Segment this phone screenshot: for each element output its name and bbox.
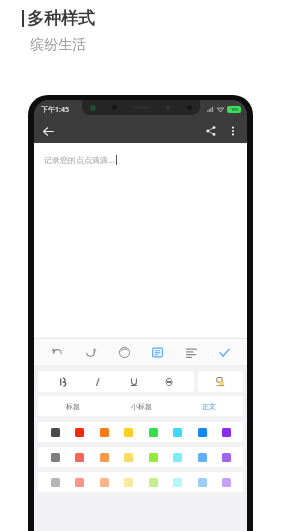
button[interactable]: Color 6	[194, 424, 210, 440]
button[interactable]: Color palette	[113, 341, 135, 363]
button[interactable]: Color 4	[145, 474, 161, 490]
button[interactable]: Align	[180, 341, 202, 363]
button[interactable]: Color 7	[218, 449, 234, 465]
button[interactable]: Italic	[88, 372, 108, 392]
staticText: 小标题	[131, 402, 152, 411]
staticText: 下午1:45	[41, 105, 69, 115]
button[interactable]: Color 2	[96, 449, 112, 465]
staticText: 100	[231, 107, 238, 112]
staticText: 记录您的点点滴滴...	[44, 154, 115, 165]
staticText: 缤纷生活	[30, 36, 86, 54]
button[interactable]: Color 6	[194, 474, 210, 490]
button[interactable]: Color 2	[96, 474, 112, 490]
button[interactable]: Back	[38, 121, 58, 141]
button[interactable]: Color 4	[145, 449, 161, 465]
button[interactable]: Undo	[46, 341, 68, 363]
button[interactable]: Color 1	[71, 424, 87, 440]
staticText: 正文	[202, 402, 216, 411]
button[interactable]: Color 3	[120, 474, 136, 490]
button[interactable]: More options	[223, 121, 243, 141]
button[interactable]: Text style	[146, 341, 168, 363]
button[interactable]: Share	[201, 121, 221, 141]
button[interactable]: Color 7	[218, 474, 234, 490]
button[interactable]: Color 7	[218, 424, 234, 440]
button[interactable]: Bold	[53, 372, 73, 392]
button[interactable]: Color 1	[71, 449, 87, 465]
button[interactable]: Color 5	[169, 474, 185, 490]
button[interactable]: Highlight	[198, 371, 243, 392]
button[interactable]: Color 3	[120, 449, 136, 465]
button[interactable]: Strikethrough	[159, 372, 179, 392]
button[interactable]: 正文	[175, 396, 243, 416]
button[interactable]: 标题	[38, 396, 107, 416]
button[interactable]: Done	[213, 341, 235, 363]
button[interactable]: Redo	[79, 341, 101, 363]
staticText: 标题	[66, 402, 80, 411]
button[interactable]: Color 0	[47, 474, 63, 490]
staticText: 多种样式	[27, 8, 95, 29]
button[interactable]: Color 0	[47, 424, 63, 440]
button[interactable]: Color 0	[47, 449, 63, 465]
button[interactable]: Color 1	[71, 474, 87, 490]
button[interactable]: Color 4	[145, 424, 161, 440]
button[interactable]: Underline	[124, 372, 144, 392]
button[interactable]: Color 5	[169, 424, 185, 440]
button[interactable]: Color 2	[96, 424, 112, 440]
button[interactable]: Color 6	[194, 449, 210, 465]
button[interactable]: Color 5	[169, 449, 185, 465]
button[interactable]: 小标题	[107, 396, 175, 416]
button[interactable]: Color 3	[120, 424, 136, 440]
